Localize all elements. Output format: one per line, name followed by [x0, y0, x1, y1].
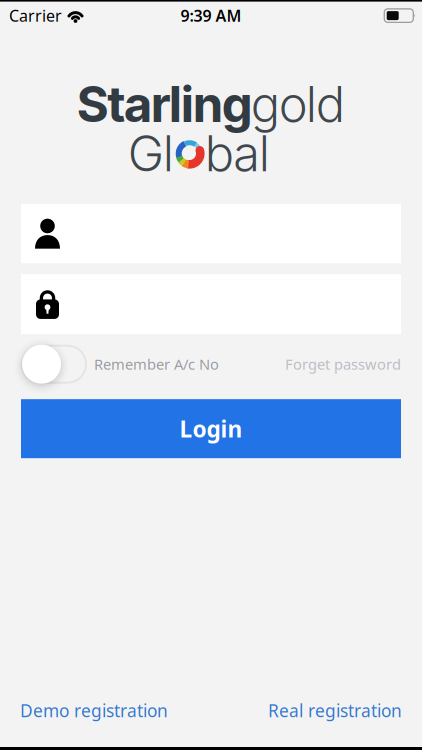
button[interactable]: Forget password — [285, 354, 401, 374]
staticText: gold — [251, 75, 344, 134]
staticText: Real registration — [268, 699, 402, 722]
staticText: Forget password — [285, 354, 401, 374]
button[interactable]: Real registration — [268, 699, 402, 722]
staticText: Carrier — [9, 5, 62, 26]
staticText: Login — [179, 414, 242, 444]
staticText: Demo registration — [20, 699, 168, 722]
button[interactable]: Login — [21, 399, 401, 458]
staticText: Gl — [128, 124, 173, 183]
button[interactable]: Demo registration — [20, 699, 168, 722]
button[interactable]: Account number — [21, 204, 401, 263]
staticText: Remember A/c No — [94, 354, 219, 374]
button[interactable]: Remember A/c No — [22, 344, 219, 384]
staticText: Starling — [77, 75, 251, 134]
staticText: 9:39 AM — [180, 5, 241, 26]
staticText: bal — [205, 124, 269, 183]
button[interactable]: Password — [21, 274, 401, 334]
